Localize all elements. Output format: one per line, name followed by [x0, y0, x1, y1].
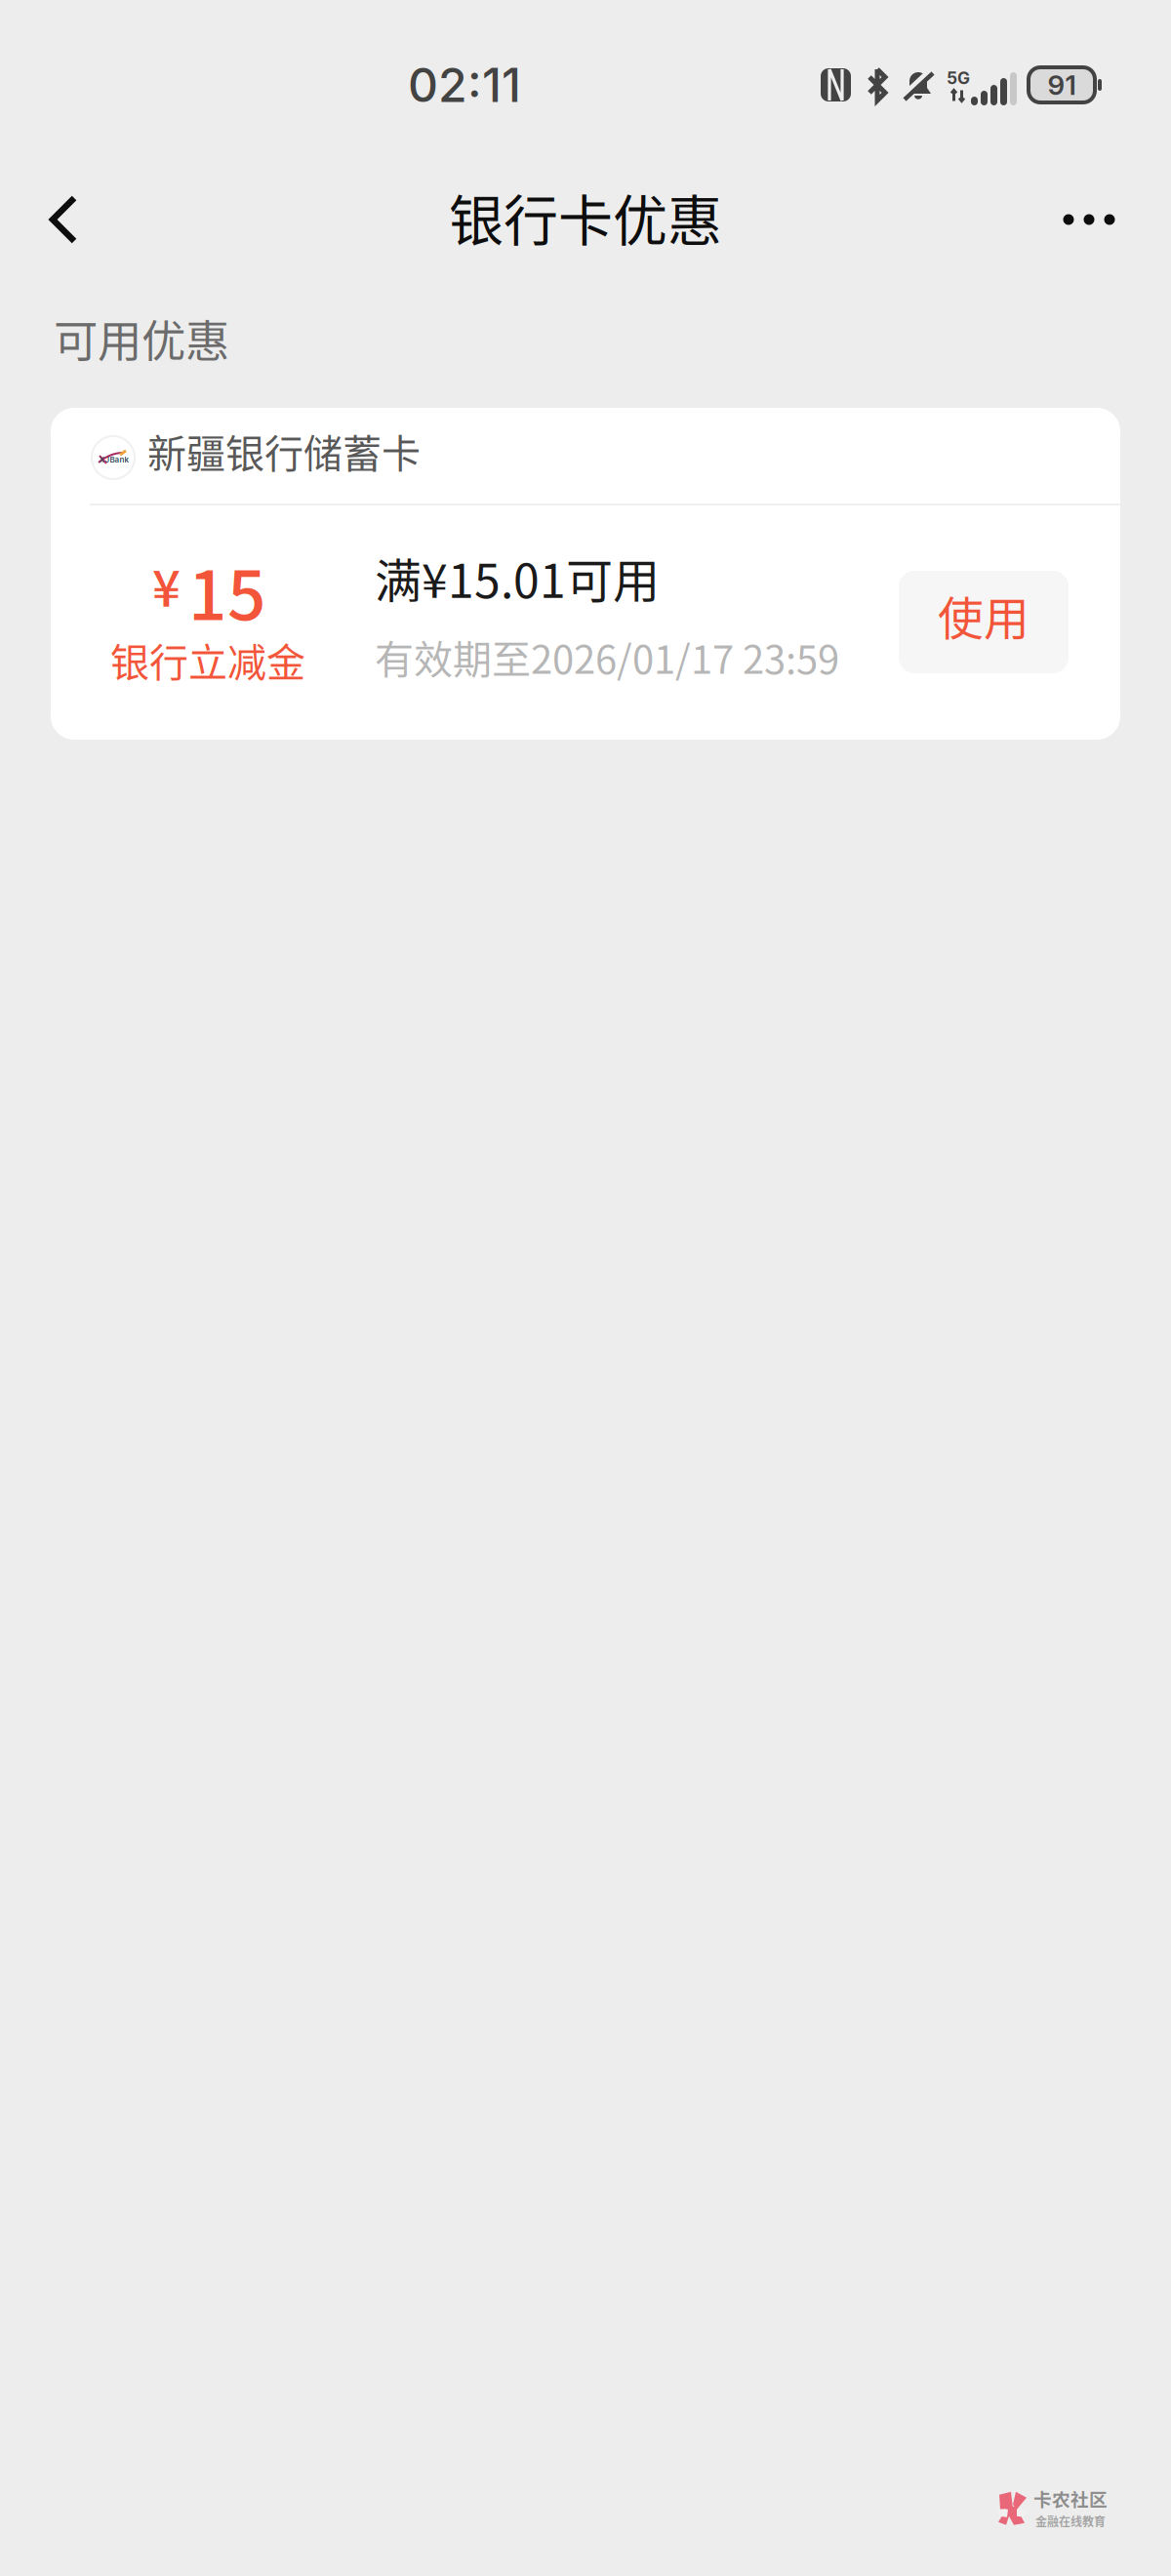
staticText: 银行立减金: [110, 631, 305, 688]
staticText: XJBank: [99, 455, 129, 464]
staticText: 91: [1048, 68, 1076, 101]
button[interactable]: 使用: [899, 571, 1069, 673]
staticText: 金融在线教育: [1035, 2513, 1106, 2530]
staticText: 有效期至2026/01/17 23:59: [375, 628, 839, 685]
button[interactable]: Back: [25, 170, 125, 269]
staticText: 使用: [938, 582, 1030, 648]
staticText: 15: [188, 542, 266, 640]
staticText: 卡农社区: [1033, 2485, 1108, 2512]
staticText: 02:11: [408, 57, 521, 113]
staticText: 满¥15.01可用: [375, 543, 660, 611]
staticText: 5G: [947, 68, 970, 88]
staticText: 银行卡优惠: [449, 177, 722, 256]
staticText: 可用优惠: [54, 306, 229, 370]
staticText: 新疆银行储蓄卡: [147, 423, 421, 479]
button[interactable]: More options: [1037, 170, 1141, 269]
staticText: ¥: [152, 549, 181, 621]
